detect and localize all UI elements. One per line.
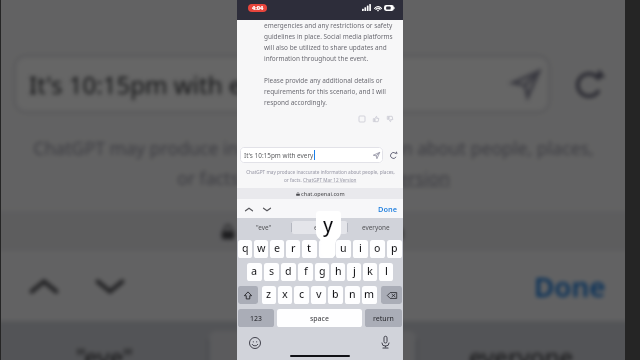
staticText: chat.openai.com	[240, 217, 405, 245]
button[interactable]: "eve"	[237, 218, 291, 237]
staticText: w	[257, 241, 266, 255]
staticText: or facts.	[177, 166, 249, 190]
staticText: "eve"	[256, 223, 272, 232]
staticText: emergencies and any restrictions or safe…	[264, 21, 393, 107]
staticText: ChatGPT may produce inaccurate informati…	[33, 136, 594, 160]
staticText: h	[335, 264, 342, 278]
staticText: u	[340, 241, 347, 255]
staticText: It's 10:15pm with every	[244, 151, 314, 160]
button[interactable]: Previous field	[244, 204, 254, 214]
button[interactable]: Regenerate response	[387, 149, 399, 161]
button[interactable]: Regenerate response	[566, 62, 611, 107]
button[interactable]: Send	[371, 150, 381, 160]
staticText: m	[364, 287, 375, 301]
button[interactable]: Previous field	[25, 267, 63, 305]
button[interactable]: d	[281, 263, 296, 281]
button[interactable]: Shift	[238, 286, 258, 304]
staticText: n	[349, 287, 356, 301]
button[interactable]: eve	[209, 331, 416, 360]
button[interactable]: It's 10:15pm with every	[240, 147, 383, 163]
staticText: x	[282, 287, 288, 301]
button[interactable]: Send	[507, 65, 545, 103]
button[interactable]: t	[302, 240, 317, 258]
button[interactable]: a	[247, 263, 262, 281]
button[interactable]: Next field	[262, 204, 272, 214]
button[interactable]: space	[277, 309, 362, 327]
button[interactable]: z	[262, 286, 276, 304]
button[interactable]: y	[319, 240, 334, 258]
button[interactable]: Next field	[91, 267, 129, 305]
button[interactable]: Good response	[372, 115, 380, 123]
button[interactable]: Done	[534, 267, 606, 305]
staticText: "eve"	[76, 340, 133, 360]
button[interactable]: return	[365, 309, 402, 327]
staticText: y	[325, 299, 363, 360]
button[interactable]: s	[264, 263, 279, 281]
staticText: everyone	[469, 340, 574, 360]
staticText: c	[299, 287, 305, 301]
staticText: 123	[250, 314, 262, 323]
button[interactable]: k	[363, 263, 377, 281]
button[interactable]: b	[328, 286, 343, 304]
button[interactable]: v	[311, 286, 326, 304]
staticText: d	[285, 264, 292, 278]
staticText: y	[323, 212, 334, 238]
button[interactable]: e	[270, 240, 284, 258]
staticText: eve	[293, 340, 332, 360]
staticText: ChatGPT Mar 12 Version	[303, 177, 357, 183]
button[interactable]: g	[315, 263, 329, 281]
staticText: e	[274, 241, 281, 255]
button[interactable]: h	[331, 263, 345, 281]
staticText: a	[251, 264, 258, 278]
button[interactable]: Dictation	[381, 336, 390, 349]
staticText: space	[310, 314, 329, 323]
staticText: everyone	[362, 223, 390, 232]
staticText: b	[332, 287, 339, 301]
staticText: 4:04	[252, 4, 264, 12]
staticText: r	[291, 241, 296, 255]
button[interactable]: n	[345, 286, 360, 304]
button[interactable]: i	[353, 240, 368, 258]
button[interactable]: eve	[292, 221, 347, 234]
button[interactable]: c	[294, 286, 309, 304]
button[interactable]: Backspace	[381, 286, 402, 304]
button[interactable]: "eve"	[1, 321, 207, 360]
staticText: o	[374, 241, 381, 255]
staticText: f	[304, 264, 308, 278]
button[interactable]: Emoji keyboard	[249, 337, 261, 349]
staticText: p	[391, 241, 398, 255]
button[interactable]: Done	[378, 204, 398, 214]
button[interactable]: Copy	[358, 115, 366, 123]
button[interactable]: m	[362, 286, 377, 304]
staticText: ChatGPT may produce inaccurate informati…	[246, 169, 395, 175]
button[interactable]: r	[286, 240, 300, 258]
staticText: q	[242, 241, 249, 255]
button[interactable]: everyone	[348, 218, 403, 237]
button[interactable]: It's 10:15pm with every	[13, 54, 551, 114]
staticText: z	[266, 287, 272, 301]
button[interactable]: x	[278, 286, 292, 304]
button[interactable]: Bad response	[386, 115, 394, 123]
button[interactable]: u	[336, 240, 351, 258]
button[interactable]: w	[254, 240, 268, 258]
button[interactable]: 123	[238, 309, 274, 327]
button[interactable]: j	[347, 263, 361, 281]
button[interactable]: q	[238, 240, 252, 258]
button[interactable]: p	[387, 240, 402, 258]
staticText: k	[367, 264, 373, 278]
button[interactable]: everyone	[418, 321, 625, 360]
staticText: return	[373, 314, 394, 323]
staticText: It's 10:15pm with every	[29, 68, 290, 101]
staticText: eve	[314, 223, 325, 232]
staticText: Done	[534, 267, 606, 305]
button[interactable]: l	[379, 263, 393, 281]
button[interactable]: f	[298, 263, 313, 281]
staticText: i	[359, 241, 362, 255]
staticText: v	[316, 287, 322, 301]
staticText: or facts.	[284, 177, 303, 183]
staticText: j	[353, 264, 356, 278]
staticText: Done	[378, 204, 398, 214]
button[interactable]: o	[370, 240, 385, 258]
staticText: ChatGPT Mar 12 Version	[249, 166, 451, 190]
